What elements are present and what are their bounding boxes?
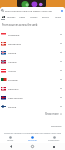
staticText: Singapore [8, 33, 60, 36]
staticText: Finland [8, 105, 60, 108]
button[interactable]: Finland [0, 102, 65, 111]
button[interactable]: Show more [45, 112, 62, 116]
button[interactable]: Recent apps [43, 143, 65, 150]
button[interactable]: All [0, 14, 6, 19]
button[interactable]: Collections [43, 135, 65, 142]
button[interactable]: Portugal [0, 75, 65, 84]
staticText: Maps [55, 15, 62, 18]
staticText: Austria [8, 69, 60, 72]
button[interactable]: Home [21, 143, 43, 150]
staticText: Discover [28, 139, 37, 142]
button[interactable]: Feedback [51, 124, 62, 127]
staticText: Searches related to countries with the l… [4, 132, 62, 135]
button[interactable]: New Zealand [0, 93, 65, 102]
button[interactable]: Account [59, 8, 64, 13]
staticText: what countries have the lowest crime rat… [5, 9, 58, 12]
staticText: Images [7, 15, 16, 18]
button[interactable]: News [17, 14, 28, 19]
staticText: Collections [48, 139, 60, 142]
staticText: Iceland [8, 51, 60, 54]
staticText: New Zealand [8, 96, 60, 99]
button[interactable]: Back [0, 143, 21, 150]
button[interactable]: Home [0, 135, 21, 142]
button[interactable]: Denmark [0, 84, 65, 93]
button[interactable]: Discover [21, 135, 43, 142]
staticText: Videos [30, 15, 38, 18]
staticText: Switzerland [8, 42, 60, 45]
button[interactable]: Books [39, 14, 52, 19]
button[interactable]: Norway [0, 57, 65, 66]
button[interactable]: Images [6, 14, 17, 19]
button[interactable]: Videos [28, 14, 39, 19]
staticText: News [19, 15, 26, 18]
button[interactable]: Iceland [0, 48, 65, 57]
staticText: Show more [45, 112, 59, 116]
staticText: Home [7, 139, 14, 142]
button[interactable]: Singapore [0, 30, 65, 39]
other: Search [1, 9, 4, 12]
button[interactable]: Maps [52, 14, 65, 19]
staticText: Feedback [51, 124, 62, 127]
staticText: Books [42, 15, 49, 18]
staticText: Norway [8, 60, 60, 63]
staticText: Portugal [8, 78, 60, 81]
staticText: From sources across the web [2, 23, 38, 27]
staticText: Denmark [8, 87, 60, 90]
button[interactable]: Switzerland [0, 39, 65, 48]
button[interactable]: Austria [0, 66, 65, 75]
